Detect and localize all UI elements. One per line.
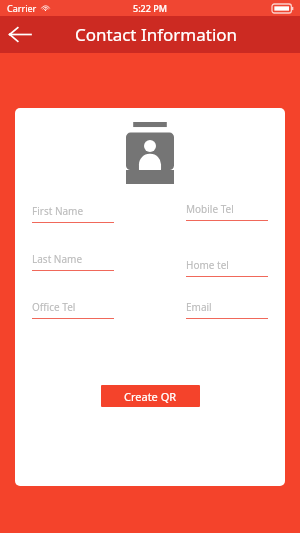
button[interactable]: Office Tel (32, 300, 114, 319)
staticText: Carrier (7, 2, 37, 14)
staticText: Email (186, 300, 212, 314)
staticText: 5:22 PM (133, 2, 167, 14)
button[interactable]: Create QR (101, 385, 200, 407)
staticText: Mobile Tel (186, 202, 234, 216)
button[interactable]: Mobile Tel (186, 202, 268, 221)
button[interactable]: Last Name (32, 252, 114, 271)
staticText: Office Tel (32, 300, 76, 314)
button[interactable]: Home tel (186, 258, 268, 277)
button[interactable]: Email (186, 300, 268, 319)
staticText: Create QR (124, 389, 177, 404)
staticText: Contact Information (75, 23, 238, 46)
staticText: Home tel (186, 258, 229, 272)
staticText: Last Name (32, 252, 83, 266)
button[interactable]: Back (0, 16, 40, 53)
staticText: First Name (32, 204, 84, 218)
button[interactable]: First Name (32, 204, 114, 223)
